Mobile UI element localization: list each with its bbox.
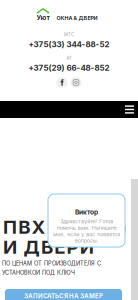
staticText: +375(33) 344-88-52 bbox=[28, 39, 109, 49]
button[interactable]: Menu bbox=[121, 101, 138, 118]
staticText: УСТАНОВКОЙ ПОД КЛЮЧ bbox=[2, 269, 75, 276]
staticText: ОКНА & ДВЕРИ bbox=[56, 15, 97, 21]
staticText: Здравствуйте! Готов помочь вам. Напишите… bbox=[53, 218, 120, 244]
staticText: ПВХ ОКНА bbox=[3, 216, 111, 238]
button[interactable]: ЗАПИСАТЬСЯ НА ЗАМЕР bbox=[5, 289, 122, 300]
staticText: A1 bbox=[66, 55, 71, 61]
staticText: +375(29) 66-48-852 bbox=[28, 63, 109, 73]
staticText: И ДВЕРИ bbox=[3, 236, 94, 258]
button[interactable]: Facebook bbox=[56, 77, 67, 88]
staticText: МТС bbox=[64, 32, 74, 37]
button[interactable]: Instagram bbox=[70, 77, 81, 88]
staticText: ЗАПИСАТЬСЯ НА ЗАМЕР bbox=[24, 292, 103, 300]
staticText: Уют bbox=[36, 14, 49, 22]
staticText: Виктор bbox=[75, 208, 98, 216]
staticText: ПО ЦЕНАМ ОТ ПРОИЗВОДИТЕЛЯ С bbox=[2, 260, 101, 267]
